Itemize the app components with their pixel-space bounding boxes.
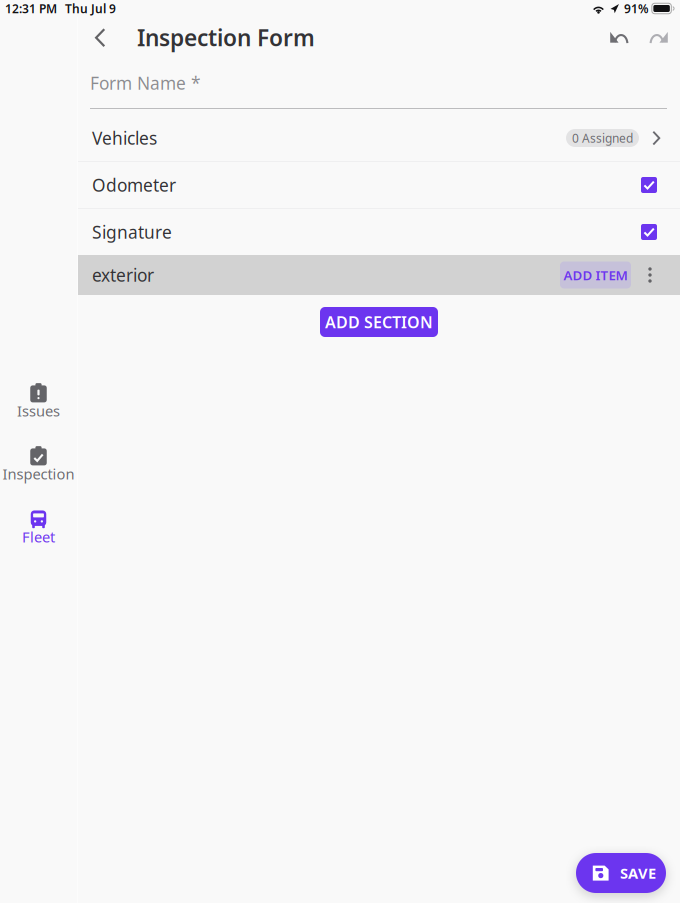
staticText: Form Name *: [90, 71, 201, 94]
button[interactable]: ADD ITEM: [560, 261, 631, 288]
staticText: 0 Assigned: [572, 130, 633, 146]
button[interactable]: Undo: [599, 17, 639, 57]
staticText: exterior: [92, 263, 154, 286]
staticText: 91%: [624, 0, 649, 16]
button[interactable]: Inspection: [0, 446, 77, 488]
staticText: Inspection Form: [137, 22, 315, 52]
staticText: Vehicles: [92, 126, 157, 149]
button[interactable]: More options: [641, 265, 659, 285]
staticText: ADD SECTION: [325, 311, 433, 333]
staticText: Inspection: [2, 464, 74, 483]
staticText: Thu Jul 9: [65, 0, 116, 16]
button[interactable]: Fleet: [0, 509, 77, 551]
button[interactable]: Issues: [0, 383, 77, 425]
button[interactable]: Back: [83, 17, 117, 57]
staticText: 12:31 PM: [5, 0, 57, 16]
button[interactable]: SAVE: [576, 853, 666, 893]
button[interactable]: ADD SECTION: [320, 307, 438, 337]
staticText: Fleet: [22, 527, 55, 546]
staticText: SAVE: [620, 863, 656, 883]
button[interactable]: Redo: [639, 17, 679, 57]
staticText: Signature: [92, 220, 172, 243]
staticText: Issues: [17, 401, 60, 420]
staticText: Odometer: [92, 173, 176, 196]
staticText: ADD ITEM: [563, 266, 627, 284]
